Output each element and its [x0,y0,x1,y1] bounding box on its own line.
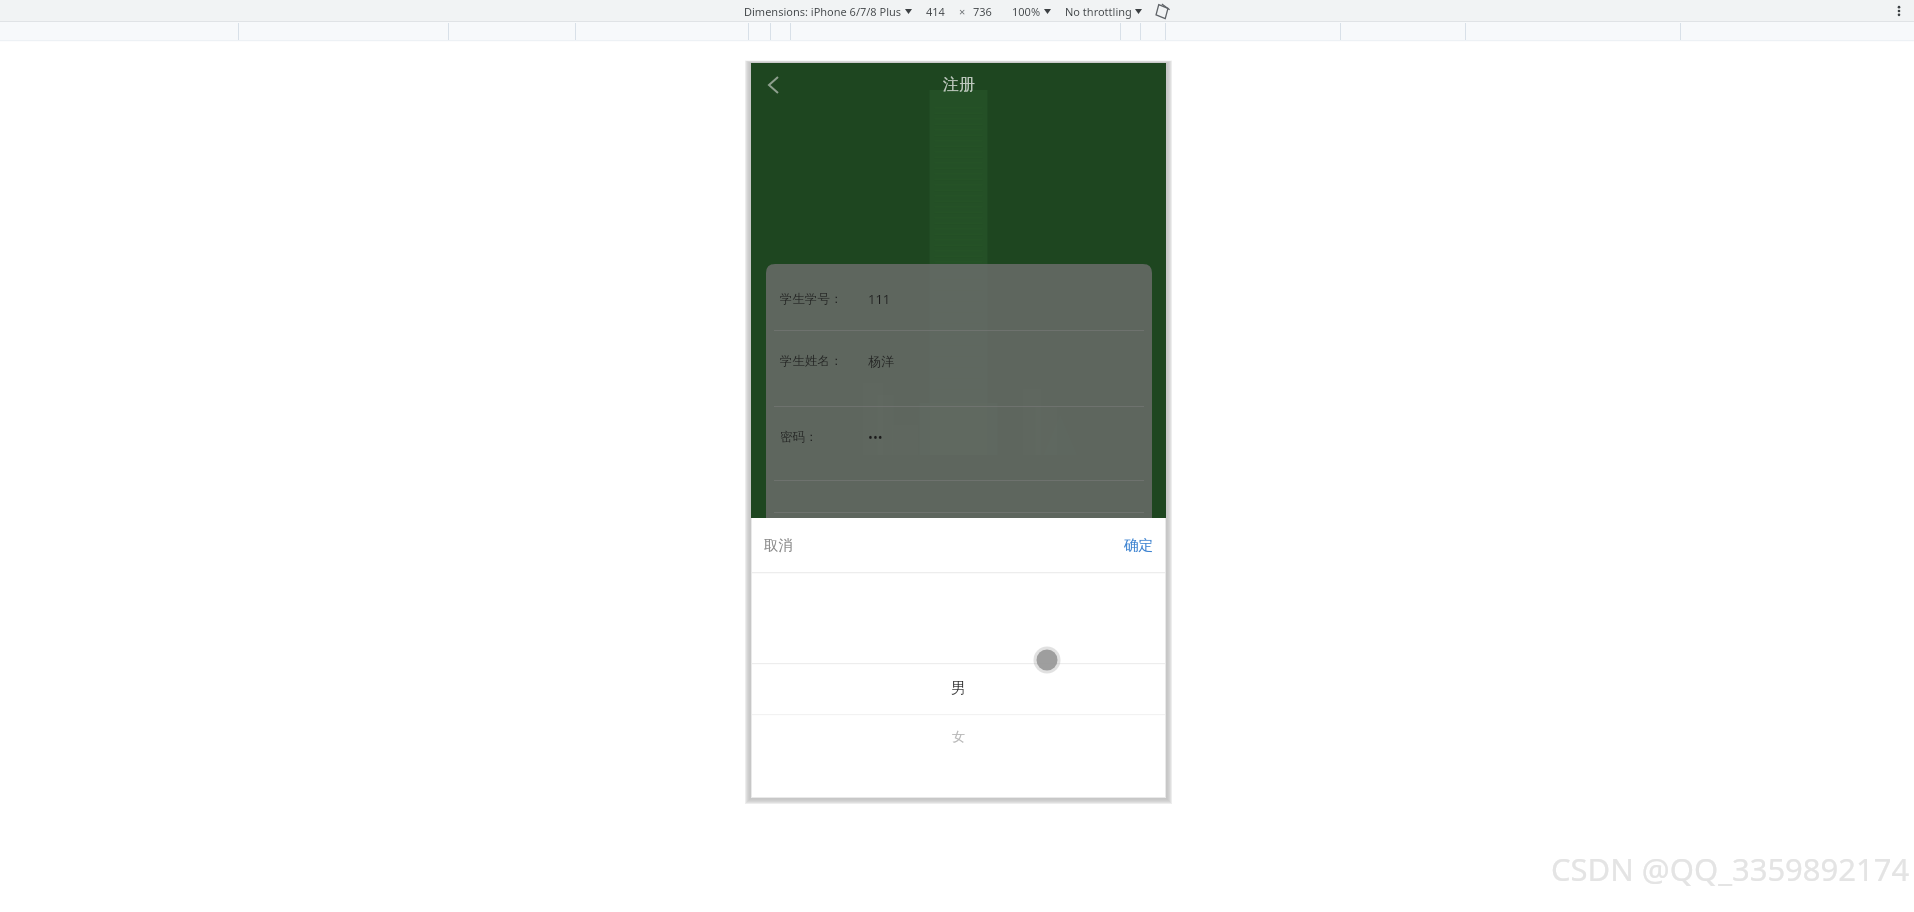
staticText: 414 [926,4,945,19]
button[interactable]: 确定 [1124,518,1153,572]
staticText: × [959,4,966,19]
staticText: 学生姓名： [780,353,843,369]
staticText: 男 [951,679,966,698]
staticText: CSDN @QQ_3359892174 [1551,848,1910,890]
staticText: 736 [973,4,992,19]
button[interactable]: 男 [751,663,1166,714]
staticText: 111 [868,290,891,308]
button[interactable]: Back [755,67,793,105]
staticText: 100% [1012,4,1041,19]
button[interactable]: 取消 [764,518,793,572]
button[interactable]: 学生姓名： [766,330,1152,392]
staticText: 取消 [764,536,793,554]
staticText: 杨洋 [868,353,894,369]
staticText: ••• [868,428,883,446]
button[interactable]: More options [1891,3,1907,19]
staticText: 密码： [780,429,818,445]
button[interactable]: 密码： [766,406,1152,468]
button[interactable]: 学生学号： [766,268,1152,330]
staticText: 女 [952,728,965,744]
staticText: 学生学号： [780,291,843,307]
staticText: Dimensions: iPhone 6/7/8 Plus [744,4,902,19]
button[interactable]: Rotate [1154,3,1171,20]
staticText: No throttling [1065,4,1132,19]
button[interactable]: 女 [751,714,1166,758]
staticText: 确定 [1124,536,1153,554]
staticText: 注册 [943,75,975,95]
